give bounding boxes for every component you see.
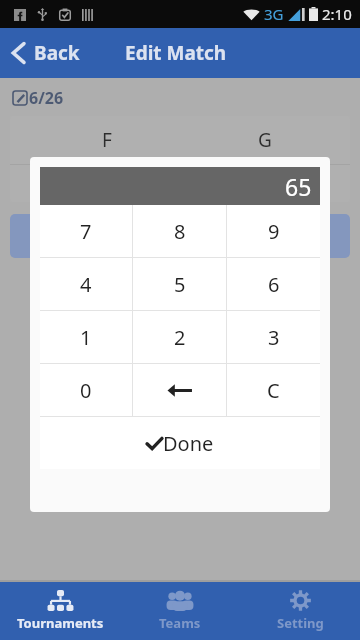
staticText: 7 (80, 218, 92, 245)
staticText: 9 (268, 218, 280, 245)
button[interactable]: Backspace (133, 364, 226, 416)
button[interactable]: 7 (40, 205, 132, 257)
staticText: 5 (174, 271, 186, 298)
staticText: 1 (80, 324, 92, 351)
staticText: Edit Match (125, 40, 227, 66)
button[interactable]: 6 (227, 258, 320, 310)
button[interactable]: 5 (133, 258, 226, 310)
staticText: Teams (159, 614, 201, 632)
button[interactable]: C (227, 364, 320, 416)
button[interactable]: Tournaments (0, 582, 120, 640)
button[interactable]: 4 (40, 258, 132, 310)
staticText: F (102, 127, 112, 153)
staticText: G (258, 127, 272, 153)
button[interactable]: 8 (133, 205, 226, 257)
staticText: 65 (285, 171, 312, 202)
button[interactable]: Next (306, 214, 350, 258)
button[interactable]: 1 (40, 311, 132, 363)
staticText: 3G (264, 4, 284, 24)
staticText: C (267, 377, 280, 404)
staticText: 2:10 (322, 4, 352, 24)
button[interactable]: Back (0, 28, 92, 78)
button[interactable]: Setting (240, 582, 360, 640)
staticText: 0 (80, 377, 92, 404)
button[interactable]: Teams (120, 582, 240, 640)
button[interactable]: Done (40, 417, 320, 469)
staticText: Back (34, 40, 80, 66)
staticText: 6 (268, 271, 280, 298)
staticText: 2 (174, 324, 186, 351)
staticText: Tournaments (17, 614, 104, 632)
staticText: 8 (174, 218, 186, 245)
button[interactable]: 9 (227, 205, 320, 257)
staticText: 6/26 (29, 87, 64, 109)
button[interactable]: 2 (133, 311, 226, 363)
button[interactable]: Previous (10, 214, 54, 258)
staticText: Done (163, 430, 214, 457)
button[interactable]: 0 (40, 364, 132, 416)
button[interactable]: 3 (227, 311, 320, 363)
staticText: 4 (80, 271, 92, 298)
staticText: 3 (268, 324, 280, 351)
staticText: Setting (277, 614, 324, 632)
